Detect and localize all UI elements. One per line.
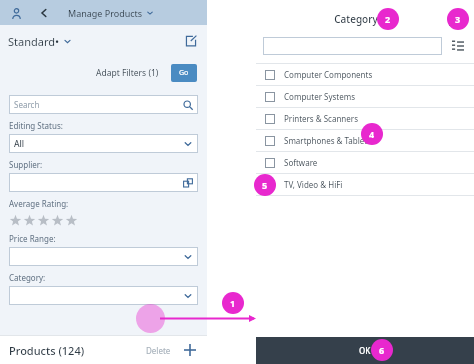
button[interactable]: Share [183, 33, 199, 49]
button[interactable]: Manage Products [68, 7, 154, 19]
staticText: Printers & Scanners [284, 113, 358, 124]
staticText: Computer Systems [284, 91, 356, 102]
button[interactable]: TV, Video & HiFi [256, 174, 474, 195]
button[interactable]: Back [35, 4, 53, 22]
staticText: Supplier: [9, 159, 43, 170]
button[interactable]: All [9, 134, 198, 153]
staticText: Software [284, 157, 318, 168]
staticText: Price Range: [9, 233, 56, 244]
staticText: Category [334, 12, 378, 26]
button[interactable]: Computer Components [256, 64, 474, 85]
staticText: 4 [369, 128, 375, 140]
staticText: Search [14, 99, 40, 110]
staticText: TV, Video & HiFi [284, 179, 343, 190]
button[interactable]: Smartphones & Tablets [256, 130, 474, 151]
button[interactable] [9, 247, 198, 266]
button[interactable]: Software [256, 152, 474, 173]
button[interactable]: Search [9, 95, 198, 114]
button[interactable]: Add [182, 342, 198, 358]
staticText: Go [179, 68, 189, 78]
button[interactable]: Close [446, 10, 464, 28]
button[interactable]: Delete [143, 345, 174, 356]
button[interactable] [9, 214, 79, 227]
staticText: Average Rating: [9, 198, 69, 209]
staticText: Standard• [8, 34, 60, 49]
button[interactable]: Adapt Filters (1) [92, 63, 163, 83]
button[interactable]: Go [171, 64, 197, 82]
staticText: 1 [230, 297, 236, 309]
staticText: 2 [385, 13, 391, 25]
staticText: Smartphones & Tablets [284, 135, 372, 146]
staticText: 6 [379, 344, 385, 356]
button[interactable]: Printers & Scanners [256, 108, 474, 129]
button[interactable]: Account [7, 4, 25, 22]
staticText: Adapt Filters (1) [96, 67, 159, 79]
button[interactable]: Standard• [8, 34, 72, 49]
button[interactable] [263, 37, 442, 55]
button[interactable]: Computer Systems [256, 86, 474, 107]
button[interactable]: Sort and group [449, 37, 467, 55]
button[interactable]: OK [256, 337, 474, 364]
staticText: Computer Components [284, 69, 373, 80]
button[interactable] [9, 286, 198, 305]
staticText: 3 [455, 13, 461, 25]
staticText: Products (124) [9, 343, 85, 358]
staticText: Delete [146, 345, 171, 356]
staticText: 5 [262, 179, 268, 191]
button[interactable] [9, 173, 198, 192]
staticText: OK [359, 345, 371, 356]
staticText: Manage Products [68, 7, 143, 19]
staticText: Editing Status: [9, 120, 63, 131]
staticText: All [14, 138, 25, 150]
staticText: Category: [9, 272, 46, 283]
